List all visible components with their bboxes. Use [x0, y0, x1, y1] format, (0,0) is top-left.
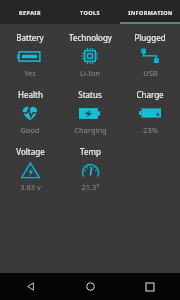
staticText: Battery [16, 32, 44, 43]
button[interactable]: Charge [120, 83, 180, 140]
button[interactable]: Health [0, 83, 60, 140]
staticText: Voltage [16, 146, 45, 157]
staticText: INFORMATION [128, 9, 173, 16]
staticText: Li-Ion [80, 68, 100, 78]
button[interactable]: Battery [0, 26, 60, 83]
staticText: USB [143, 68, 158, 78]
button[interactable]: Status [60, 83, 120, 140]
staticText: Status [78, 89, 102, 100]
staticText: Charging [74, 125, 107, 135]
staticText: 21.3° [81, 182, 100, 192]
button[interactable]: INFORMATION [120, 0, 180, 24]
staticText: REPAIR [19, 9, 41, 16]
button[interactable]: Back [0, 273, 60, 300]
staticText: Yes [24, 68, 36, 78]
button[interactable]: REPAIR [0, 0, 60, 24]
staticText: Good [20, 125, 40, 135]
button[interactable]: TOOLS [60, 0, 120, 24]
button[interactable]: Temp [60, 140, 120, 197]
staticText: Temp [80, 146, 101, 157]
staticText: 23% [143, 125, 158, 135]
button[interactable]: Plugged [120, 26, 180, 83]
staticText: 3.83 v [20, 182, 41, 192]
staticText: Charge [136, 89, 164, 100]
button[interactable]: Home [60, 273, 120, 300]
staticText: Health [18, 89, 43, 100]
staticText: TOOLS [80, 9, 100, 16]
button[interactable]: Voltage [0, 140, 60, 197]
button[interactable]: Recent apps [120, 273, 180, 300]
staticText: Plugged [134, 32, 166, 43]
button[interactable]: Technology [60, 26, 120, 83]
staticText: Technology [69, 32, 112, 43]
